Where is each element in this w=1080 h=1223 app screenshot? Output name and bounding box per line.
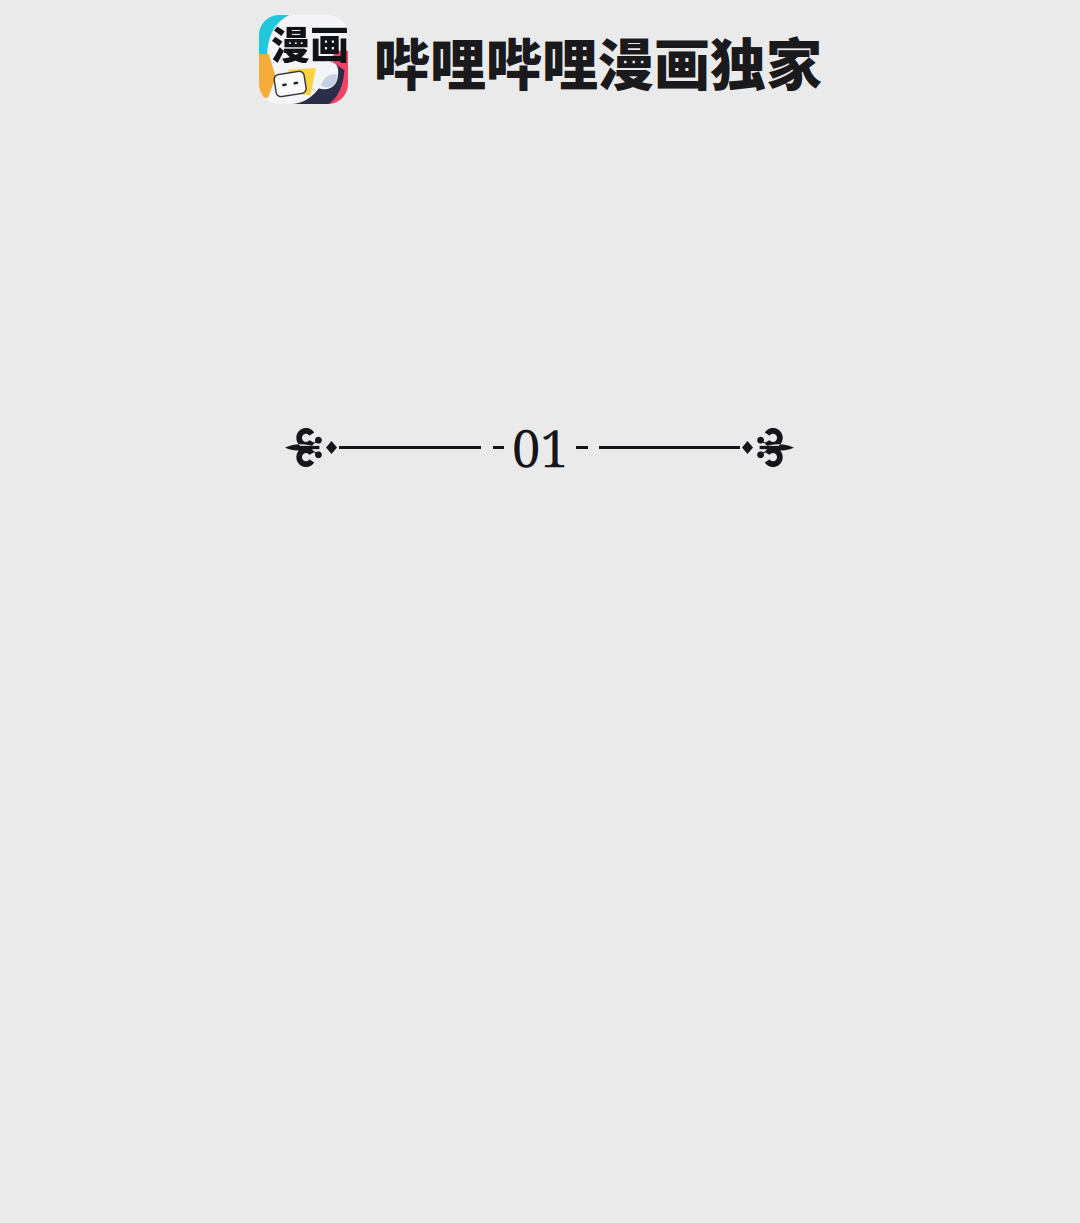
staticText: 漫画: [271, 14, 349, 70]
staticText: 哔哩哔哩漫画独家: [374, 20, 822, 101]
button[interactable]: 漫画: [0, 0, 824, 104]
staticText: 01: [512, 413, 568, 482]
